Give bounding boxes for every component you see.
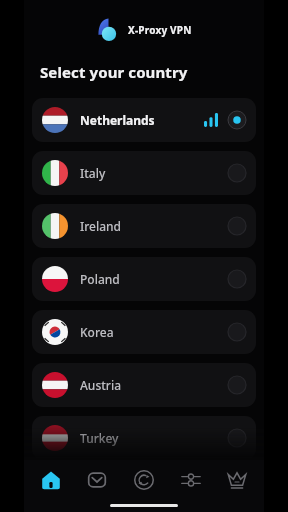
staticText: Select your country [40,62,188,82]
staticText: X-Proxy VPN [128,23,192,37]
button[interactable]: Austria [32,363,256,407]
button[interactable]: Netherlands [32,98,256,142]
staticText: Turkey [80,430,119,446]
button[interactable]: Turkey [32,416,256,460]
staticText: Netherlands [80,112,155,128]
other: Signal strength [204,113,218,127]
staticText: Poland [80,271,120,287]
staticText: Korea [80,324,114,340]
button[interactable]: Korea [32,310,256,354]
button[interactable]: Ireland [32,204,256,248]
button[interactable]: Italy [32,151,256,195]
button[interactable]: Poland [32,257,256,301]
button[interactable]: Premium [217,460,257,500]
button[interactable]: Home [31,460,71,500]
staticText: Italy [80,165,106,181]
staticText: Austria [80,377,121,393]
staticText: Ireland [80,218,122,234]
button[interactable]: Refresh [124,460,164,500]
other: X-Proxy VPN logo [96,18,120,42]
button[interactable]: Messages [77,460,117,500]
button[interactable]: Settings [171,460,211,500]
